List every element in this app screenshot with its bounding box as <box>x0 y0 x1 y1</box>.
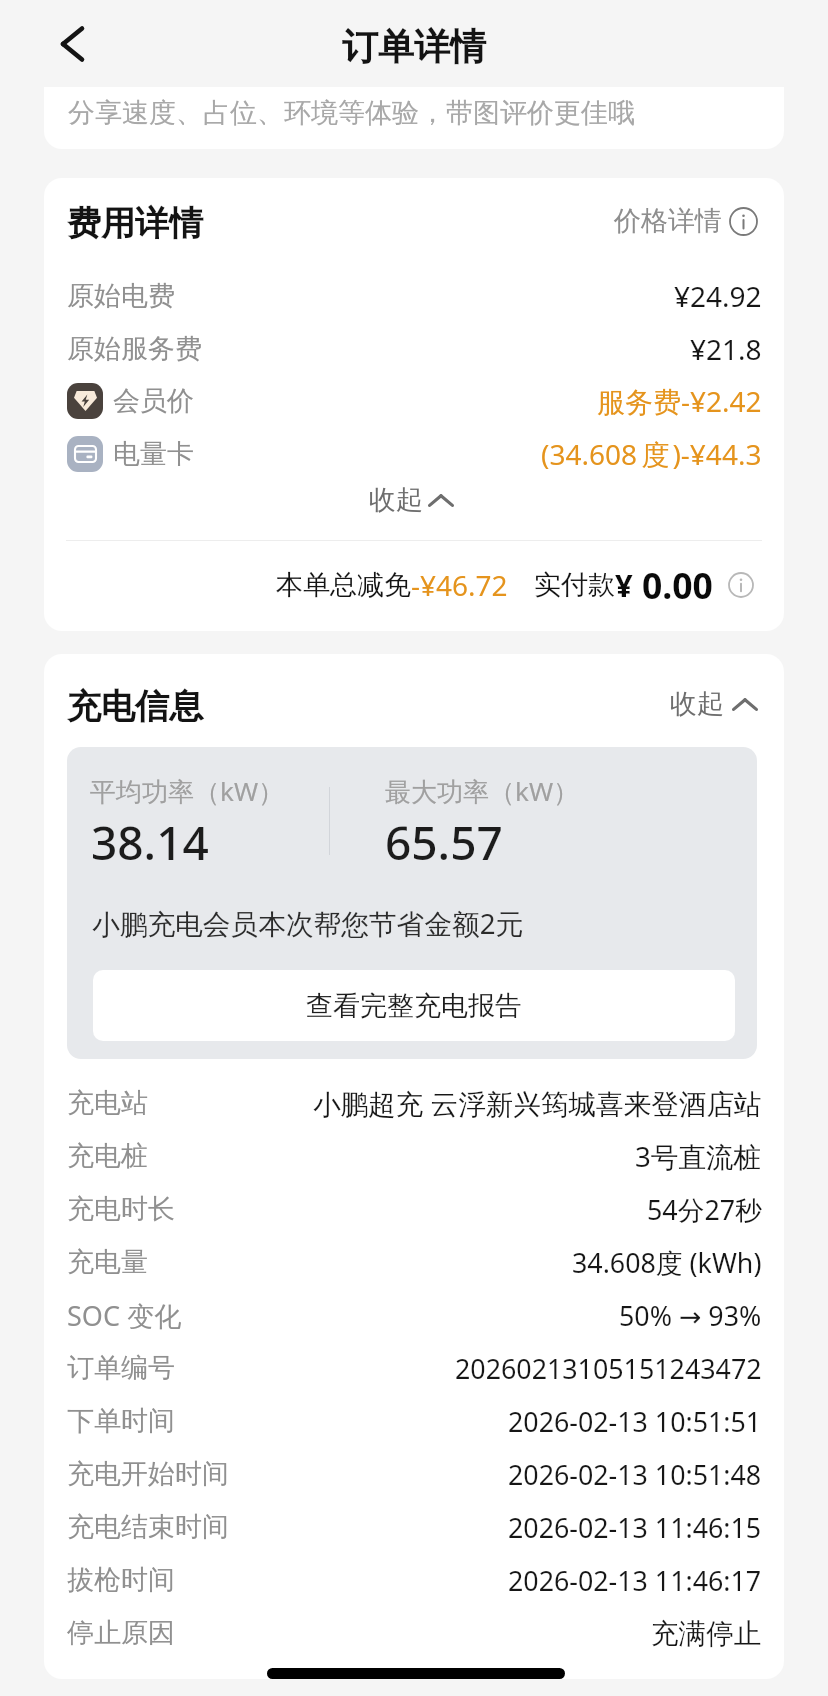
staticText: 2026-02-13 11:46:17 <box>508 1562 762 1599</box>
button[interactable]: 下单时间 <box>44 1395 784 1447</box>
staticText: 电量卡 <box>113 437 194 471</box>
staticText: 原始服务费 <box>67 332 202 366</box>
staticText: 充电信息 <box>67 685 203 728</box>
button[interactable]: 收起 <box>355 474 513 526</box>
staticText: 本单总减免 <box>276 568 411 602</box>
staticText: 2026-02-13 10:51:51 <box>508 1403 762 1440</box>
staticText: 2026-02-13 10:51:48 <box>508 1456 762 1493</box>
staticText: 充电时长 <box>67 1192 175 1226</box>
staticText: 小鹏充电会员本次帮您节省金额2元 <box>92 904 524 942</box>
staticText: 65.57 <box>385 811 503 874</box>
staticText: 收起 <box>670 687 724 721</box>
button[interactable]: 价格详情 <box>610 196 762 246</box>
staticText: 原始电费 <box>67 279 175 313</box>
button[interactable]: 停止原因 <box>44 1607 784 1659</box>
staticText: 停止原因 <box>67 1616 175 1650</box>
staticText: 服务费-¥2.42 <box>597 382 762 420</box>
staticText: 38.14 <box>91 811 209 874</box>
button[interactable]: 本单总减免 <box>276 566 508 604</box>
staticText: 0.00 <box>642 561 713 609</box>
staticText: 小鹏超充 云浮新兴筠城喜来登酒店站 <box>313 1084 762 1122</box>
staticText: ¥ <box>615 564 633 606</box>
staticText: 54分27秒 <box>647 1191 762 1228</box>
staticText: 20260213105151243472 <box>455 1350 762 1387</box>
button[interactable]: 充电量 <box>44 1236 784 1288</box>
staticText: 订单详情 <box>342 24 486 69</box>
staticText: 充电量 <box>67 1245 148 1279</box>
staticText: 下单时间 <box>67 1404 175 1438</box>
staticText: 50% → 93% <box>619 1297 762 1334</box>
staticText: 充满停止 <box>651 1616 762 1651</box>
button[interactable]: SOC 变化 <box>44 1289 784 1341</box>
staticText: (34.608 度 )-¥44.3 <box>541 435 762 473</box>
button[interactable]: 电量卡 <box>44 428 784 480</box>
staticText: 查看完整充电报告 <box>306 989 522 1023</box>
button[interactable]: 充电开始时间 <box>44 1448 784 1500</box>
button[interactable]: 充电桩 <box>44 1130 784 1182</box>
button[interactable]: 充电站 <box>44 1077 784 1129</box>
button[interactable]: 充电时长 <box>44 1183 784 1235</box>
button[interactable]: 充电结束时间 <box>44 1501 784 1553</box>
button[interactable]: 收起 <box>656 678 762 730</box>
staticText: 最大功率（kW） <box>385 773 580 809</box>
staticText: ¥24.92 <box>674 277 762 315</box>
staticText: 收起 <box>369 483 423 517</box>
staticText: 2026-02-13 11:46:15 <box>508 1509 762 1546</box>
staticText: 费用详情 <box>67 202 203 245</box>
staticText: 3号直流桩 <box>635 1137 762 1175</box>
button[interactable]: 拔枪时间 <box>44 1554 784 1606</box>
button[interactable]: 实付款说明 <box>728 572 754 598</box>
staticText: 会员价 <box>113 384 194 418</box>
button[interactable]: 原始服务费 <box>44 323 784 375</box>
staticText: 34.608度 (kWh) <box>572 1244 762 1281</box>
staticText: ¥21.8 <box>690 330 762 368</box>
staticText: 实付款 <box>534 568 615 602</box>
button[interactable]: 原始电费 <box>44 270 784 322</box>
staticText: SOC 变化 <box>67 1297 181 1334</box>
staticText: 充电结束时间 <box>67 1510 229 1544</box>
button[interactable]: 订单编号 <box>44 1342 784 1394</box>
staticText: 充电桩 <box>67 1139 148 1173</box>
staticText: -¥46.72 <box>411 566 508 604</box>
button[interactable]: 分享速度、占位、环境等体验，带图评价更佳哦 <box>44 87 784 149</box>
button[interactable]: Back <box>42 14 102 74</box>
staticText: 订单编号 <box>67 1351 175 1385</box>
button[interactable]: 查看完整充电报告 <box>93 970 735 1041</box>
staticText: 充电站 <box>67 1086 148 1120</box>
staticText: 价格详情 <box>614 204 722 238</box>
staticText: 充电开始时间 <box>67 1457 229 1491</box>
staticText: 平均功率（kW） <box>90 773 285 809</box>
staticText: 分享速度、占位、环境等体验，带图评价更佳哦 <box>68 96 635 130</box>
button[interactable]: 实付款 <box>534 561 754 609</box>
staticText: 拔枪时间 <box>67 1563 175 1597</box>
button[interactable]: 会员价 <box>44 375 784 427</box>
